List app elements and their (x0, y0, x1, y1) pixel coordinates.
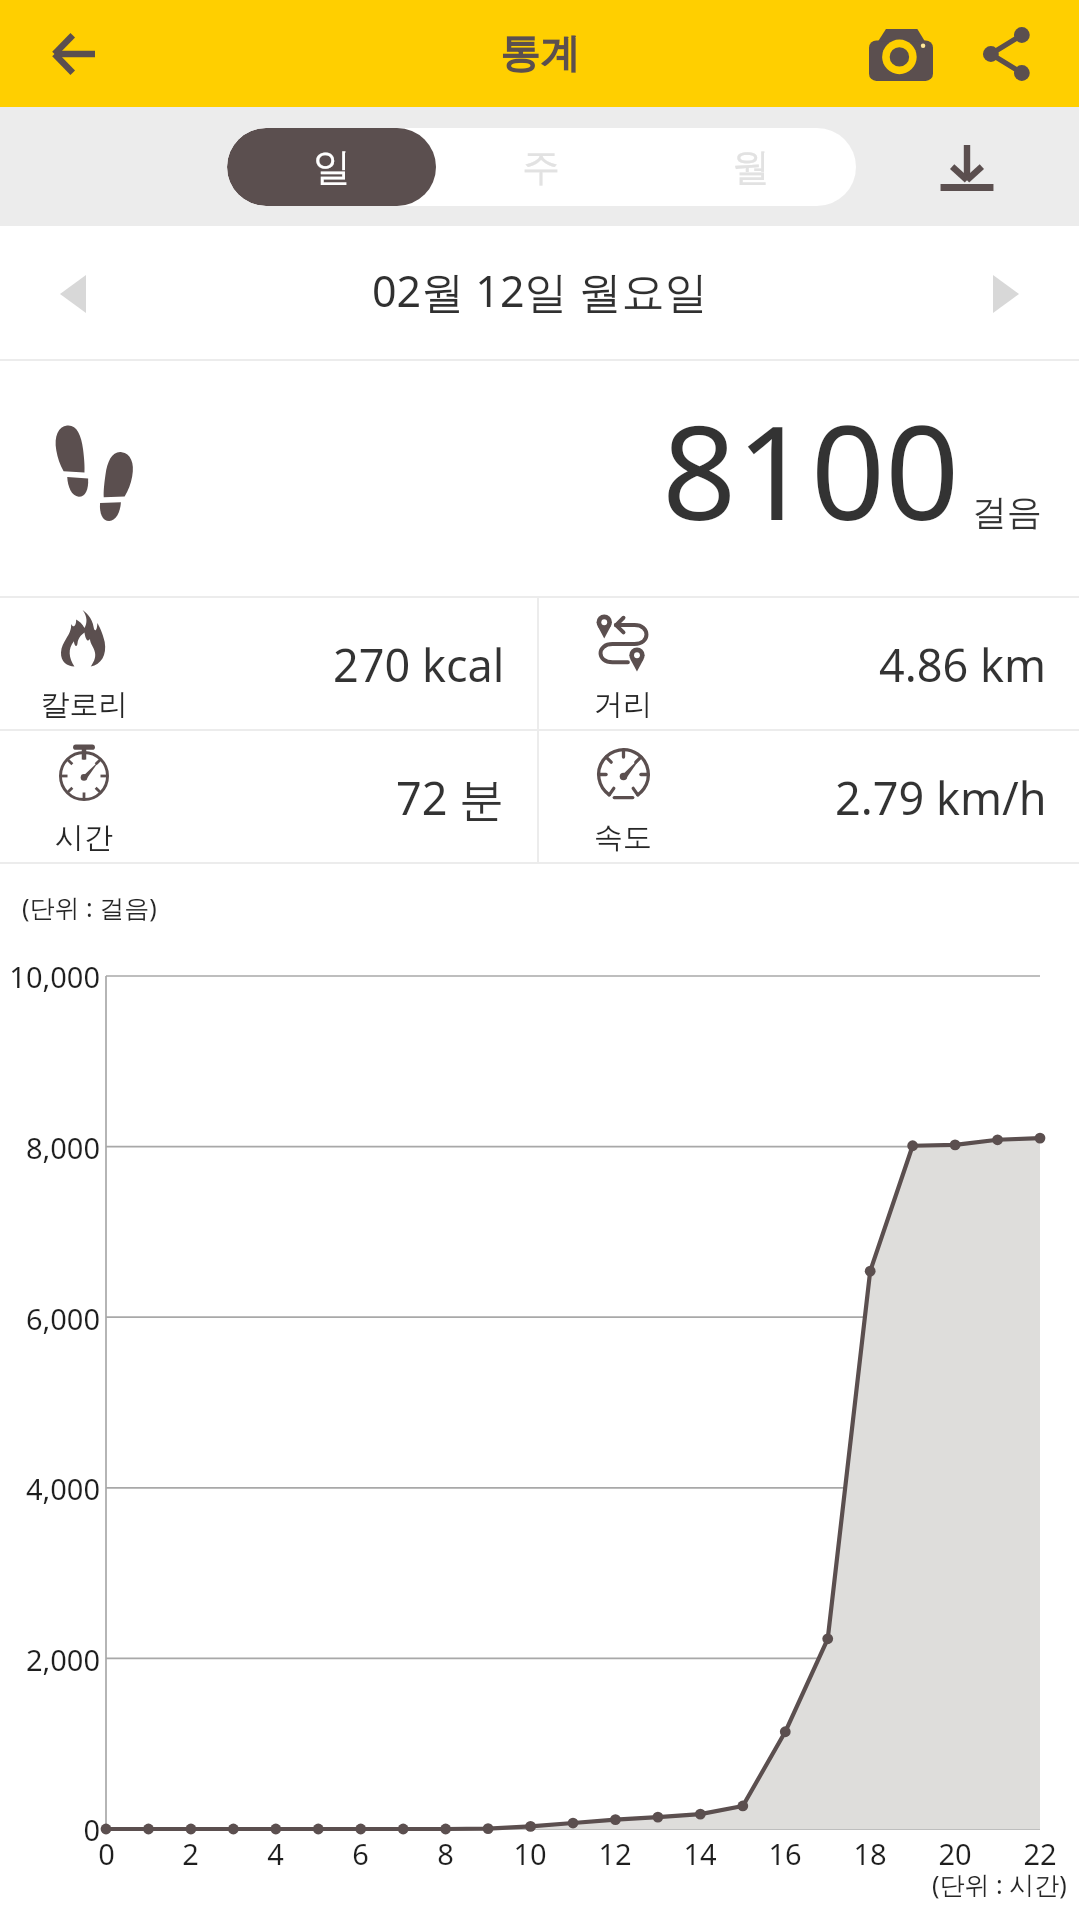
staticText: 10,000 (9, 957, 100, 996)
staticText: 4 (267, 1834, 284, 1873)
staticText: 통계 (500, 28, 580, 78)
button[interactable]: 칼로리 (0, 598, 537, 729)
staticText: 270 kcal (333, 634, 505, 695)
button[interactable]: 월 (646, 128, 856, 206)
button[interactable]: 시간 (0, 731, 537, 862)
staticText: 0 (83, 1810, 100, 1849)
staticText: 2.79 km/h (835, 767, 1047, 828)
staticText: 0 (98, 1834, 115, 1873)
button[interactable]: 속도 (539, 731, 1079, 862)
staticText: 6,000 (25, 1299, 100, 1338)
staticText: (단위 : 시간) (932, 1867, 1067, 1901)
staticText: 칼로리 (38, 686, 130, 723)
button[interactable]: Download (917, 117, 1017, 217)
staticText: 월 (732, 143, 770, 191)
staticText: 22 (1023, 1834, 1057, 1873)
staticText: 18 (853, 1834, 887, 1873)
staticText: 8,000 (25, 1128, 100, 1167)
staticText: 12 (598, 1834, 632, 1873)
staticText: 2 (182, 1834, 199, 1873)
staticText: 4.86 km (879, 634, 1047, 695)
staticText: 10 (513, 1834, 547, 1873)
staticText: 6 (352, 1834, 369, 1873)
staticText: 2,000 (25, 1640, 100, 1679)
button[interactable]: 주 (436, 128, 646, 206)
staticText: 4,000 (25, 1469, 100, 1508)
staticText: 14 (683, 1834, 717, 1873)
button[interactable]: Camera (851, 4, 951, 104)
staticText: 16 (768, 1834, 802, 1873)
staticText: 주 (522, 143, 560, 191)
button[interactable]: Back (24, 4, 124, 104)
staticText: 8 (437, 1834, 454, 1873)
button[interactable]: Next day (960, 248, 1052, 340)
button[interactable]: 거리 (539, 598, 1079, 729)
staticText: 거리 (577, 686, 669, 723)
staticText: 일 (313, 143, 351, 191)
staticText: 20 (938, 1834, 972, 1873)
staticText: 걸음 (972, 490, 1042, 534)
button[interactable]: 일 (227, 128, 436, 206)
staticText: (단위 : 걸음) (22, 890, 157, 924)
staticText: 속도 (577, 819, 669, 856)
staticText: 72 분 (396, 767, 505, 828)
button[interactable]: Share (956, 4, 1056, 104)
staticText: 8100 (662, 381, 960, 558)
staticText: 02월 12일 월요일 (372, 261, 708, 320)
button[interactable]: Previous day (27, 248, 119, 340)
staticText: 시간 (38, 819, 130, 856)
